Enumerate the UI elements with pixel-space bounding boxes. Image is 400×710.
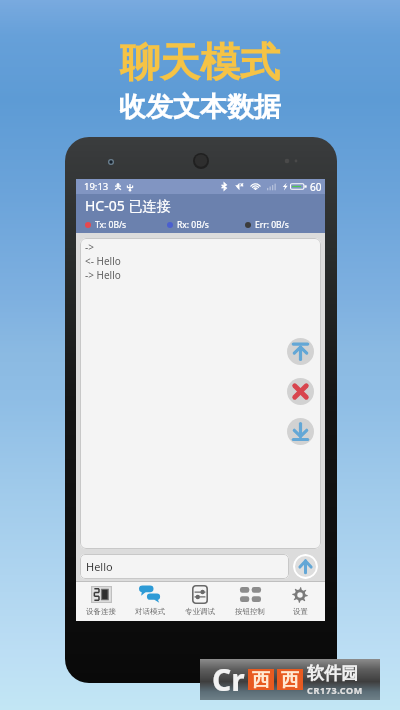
staticText: Rx: 0B/s [177,219,209,231]
staticText: <- Hello [85,254,121,268]
staticText: 60 [310,180,322,194]
staticText: 聊天模式 [120,37,280,87]
staticText: 收发文本数据 [119,90,281,124]
staticText: 设备连接 [86,607,116,616]
button[interactable]: Clear [287,378,314,405]
button[interactable]: 设备连接 [76,582,125,618]
staticText: 西 [252,669,270,690]
staticText: 专业调试 [185,607,215,616]
button[interactable]: Hello [80,554,289,579]
staticText: 设置 [293,607,308,616]
staticText: Err: 0B/s [255,219,289,231]
staticText: CR173.COM [307,684,363,696]
button[interactable]: HC-05 已连接 [76,194,325,216]
staticText: -> [85,240,94,254]
staticText: Cr [212,659,245,700]
button[interactable]: 按钮控制 [225,582,275,618]
button[interactable]: 专业调试 [175,582,225,618]
button[interactable]: Send [293,554,318,579]
staticText: 西 [281,669,299,690]
staticText: 19:13 [84,180,109,193]
button[interactable]: -> [80,238,321,549]
staticText: HC-05 已连接 [85,196,171,215]
staticText: Tx: 0B/s [95,219,127,231]
staticText: 按钮控制 [235,607,265,616]
button[interactable]: Scroll to top [287,338,314,365]
staticText: 对话模式 [135,607,165,616]
button[interactable]: 设置 [275,582,325,618]
button[interactable]: Scroll to bottom [287,418,314,445]
staticText: -> Hello [85,268,121,282]
button[interactable]: 对话模式 [125,582,175,618]
staticText: Hello [86,559,113,574]
staticText: 软件园 [307,663,358,684]
